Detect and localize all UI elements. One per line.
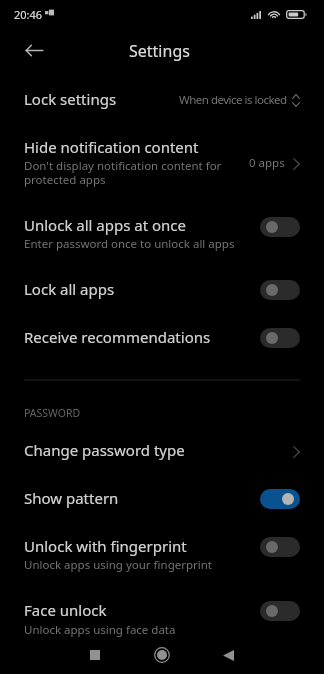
staticText: Lock settings (24, 89, 117, 109)
button[interactable]: Back (25, 38, 44, 63)
button[interactable]: Face unlock (0, 593, 324, 641)
button[interactable]: Unlock all apps at once (0, 208, 324, 256)
button[interactable]: Home (151, 644, 173, 666)
staticText: When device is locked (179, 92, 287, 108)
staticText: Lock all apps (24, 279, 115, 299)
button[interactable]: Recent apps (84, 644, 106, 666)
staticText: Face unlock (24, 600, 107, 620)
staticText: Change password type (24, 440, 185, 460)
staticText: 0 apps (249, 155, 285, 171)
button[interactable]: Lock all apps (0, 270, 324, 304)
staticText: Settings (129, 40, 190, 62)
button[interactable]: Receive recommendations (0, 318, 324, 352)
staticText: PASSWORD (24, 406, 81, 420)
staticText: Unlock all apps at once (24, 215, 187, 235)
staticText: Show pattern (24, 488, 119, 508)
staticText: Don't display notification content for p… (24, 158, 237, 187)
staticText: Unlock with fingerprint (24, 536, 187, 556)
staticText: Hide notification content (24, 137, 199, 157)
button[interactable]: Unlock with fingerprint (0, 529, 324, 577)
button[interactable]: On (260, 489, 300, 509)
button[interactable]: Back (217, 644, 239, 666)
staticText: Receive recommendations (24, 327, 211, 347)
button[interactable]: Off (260, 280, 300, 300)
button[interactable]: Show pattern (0, 479, 324, 513)
staticText: 20:46 (14, 7, 43, 22)
button[interactable]: Hide notification content (0, 130, 324, 192)
button[interactable]: Lock settings (0, 82, 324, 112)
button[interactable]: Off (260, 537, 300, 557)
button[interactable]: Off (260, 601, 300, 621)
staticText: Unlock apps using face data (24, 622, 176, 638)
staticText: Enter password once to unlock all apps (24, 236, 235, 252)
staticText: Unlock apps using your fingerprint (24, 557, 212, 573)
button[interactable]: Off (260, 328, 300, 348)
button[interactable]: Off (260, 217, 300, 237)
button[interactable]: Change password type (0, 431, 324, 465)
